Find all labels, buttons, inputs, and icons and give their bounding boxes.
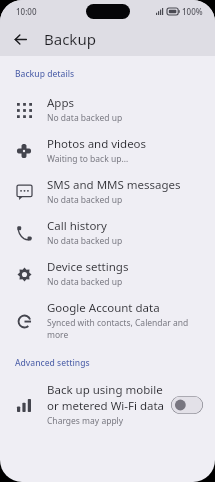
staticText: Waiting to back up…: [47, 153, 129, 165]
staticText: Photos and videos: [47, 136, 147, 152]
button[interactable]: Back up using mobile or metered Wi-Fi da…: [171, 396, 203, 414]
button[interactable]: Back up using mobile: [0, 377, 215, 432]
button[interactable]: Device settings: [0, 253, 215, 294]
staticText: 100%: [182, 6, 203, 17]
button[interactable]: Call history: [0, 212, 215, 253]
button[interactable]: Google Account data: [0, 294, 215, 347]
button[interactable]: Apps: [0, 89, 215, 130]
staticText: Call history: [47, 218, 107, 234]
staticText: Advanced settings: [15, 357, 215, 369]
staticText: Synced with contacts, Calendar and more: [47, 317, 201, 341]
staticText: Google Account data: [47, 300, 160, 316]
staticText: Backup details: [15, 68, 215, 80]
staticText: No data backed up: [47, 235, 123, 247]
staticText: Device settings: [47, 259, 129, 275]
staticText: SMS and MMS messages: [47, 177, 181, 193]
button[interactable]: Back: [8, 27, 32, 51]
staticText: or metered Wi-Fi data: [47, 398, 165, 414]
staticText: No data backed up: [47, 276, 123, 288]
staticText: Backup: [44, 29, 96, 49]
staticText: 10:00: [16, 6, 37, 17]
staticText: Apps: [47, 95, 75, 111]
button[interactable]: Photos and videos: [0, 130, 215, 171]
button[interactable]: SMS and MMS messages: [0, 171, 215, 212]
staticText: No data backed up: [47, 112, 123, 124]
staticText: Charges may apply: [47, 415, 124, 427]
staticText: No data backed up: [47, 194, 123, 206]
staticText: Back up using mobile: [47, 382, 163, 398]
